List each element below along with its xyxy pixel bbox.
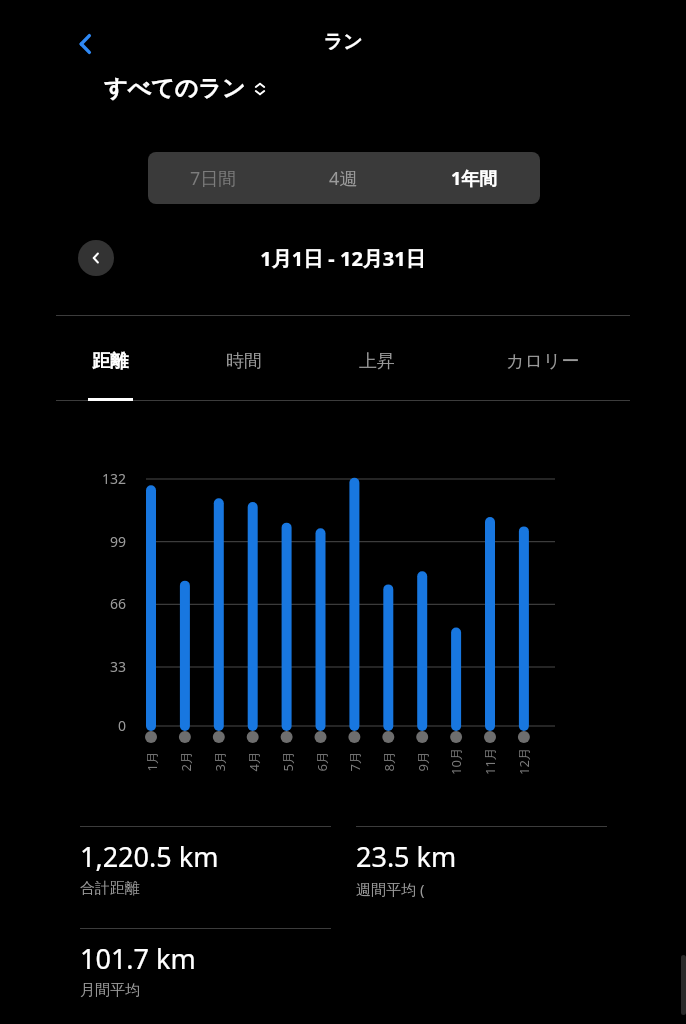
button[interactable]: 時間 — [188, 322, 300, 400]
button[interactable]: 距離 — [54, 322, 166, 400]
button[interactable]: 7日間 — [148, 152, 278, 204]
button[interactable]: すべてのラン — [96, 70, 275, 107]
staticText: 6月 — [312, 750, 330, 771]
button[interactable]: 23.5 km — [356, 826, 607, 899]
staticText: 9月 — [413, 750, 431, 771]
staticText: 0 — [56, 716, 126, 735]
staticText: 4週 — [329, 166, 358, 191]
staticText: 週間平均 ( — [356, 879, 425, 899]
staticText: 33 — [56, 657, 126, 676]
staticText: 8月 — [379, 750, 397, 771]
staticText: 2月 — [176, 750, 194, 771]
staticText: 99 — [56, 532, 126, 551]
staticText: カロリー — [506, 350, 580, 373]
staticText: すべてのラン — [104, 74, 246, 103]
staticText: 5月 — [278, 750, 296, 771]
staticText: 7月 — [345, 750, 363, 771]
staticText: 1月1日 - 12月31日 — [0, 245, 686, 272]
staticText: 3月 — [210, 750, 228, 771]
staticText: 10月 — [447, 747, 465, 775]
staticText: 7日間 — [190, 166, 237, 191]
staticText: 距離 — [92, 350, 128, 373]
button[interactable]: Back — [62, 20, 110, 68]
staticText: 11月 — [481, 747, 499, 775]
staticText: 132 — [56, 469, 126, 488]
button[interactable]: 4週 — [278, 152, 409, 204]
staticText: 4月 — [244, 750, 262, 771]
staticText: 23.5 km — [356, 838, 457, 875]
staticText: 1年間 — [451, 166, 498, 191]
button[interactable]: 1年間 — [409, 152, 540, 204]
staticText: 時間 — [226, 350, 262, 373]
staticText: 月間平均 — [80, 981, 140, 1000]
staticText: 101.7 km — [80, 940, 196, 977]
staticText: 66 — [56, 594, 126, 613]
button[interactable]: カロリー — [487, 322, 599, 400]
staticText: 1月 — [142, 750, 160, 771]
button[interactable]: Previous period — [78, 240, 114, 276]
staticText: 合計距離 — [80, 879, 140, 898]
staticText: 上昇 — [359, 350, 395, 373]
staticText: 1,220.5 km — [80, 838, 219, 875]
button[interactable]: 1,220.5 km — [80, 826, 331, 898]
button[interactable]: 101.7 km — [80, 928, 331, 1000]
button[interactable]: 上昇 — [321, 322, 433, 400]
staticText: ラン — [0, 30, 686, 54]
staticText: 12月 — [515, 747, 533, 775]
